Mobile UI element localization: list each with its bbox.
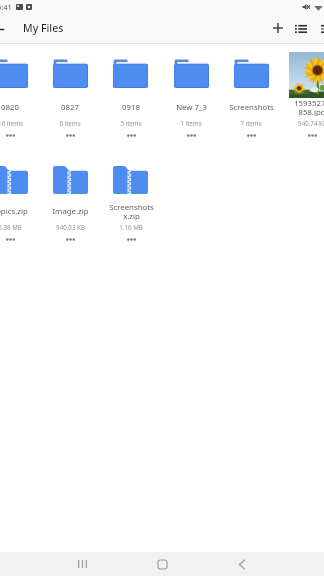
button[interactable]: More options — [315, 14, 324, 44]
staticText: 5 items — [120, 119, 142, 127]
staticText: My Files — [23, 21, 64, 35]
staticText: 16 items — [0, 119, 23, 127]
staticText: Screenshots x.zip — [109, 202, 154, 220]
button[interactable]: New 7_3 — [161, 52, 221, 134]
button[interactable]: More options — [179, 130, 203, 140]
button[interactable]: View as list — [289, 14, 312, 44]
staticText: topics.zip — [0, 206, 28, 217]
button[interactable]: Image.zip — [40, 160, 100, 238]
button[interactable]: 15935272858.jpg — [282, 52, 324, 134]
staticText: 1.16 MB — [119, 223, 143, 231]
button[interactable]: Back — [0, 14, 8, 44]
button[interactable]: More options — [0, 130, 22, 140]
staticText: 0820 — [1, 102, 19, 113]
button[interactable]: More options — [58, 130, 82, 140]
button[interactable]: Screenshots — [221, 52, 281, 134]
button[interactable]: More options — [119, 234, 143, 244]
button[interactable]: More options — [58, 234, 82, 244]
button[interactable]: topics.zip — [0, 160, 40, 238]
staticText: 15935272 858.jpg — [294, 98, 324, 116]
staticText: 940.03 KB — [56, 223, 85, 231]
staticText: 6.38 MB — [0, 223, 22, 231]
button[interactable]: More options — [300, 130, 324, 140]
button[interactable]: More options — [239, 130, 263, 140]
button[interactable]: Screenshotsx.zip — [101, 160, 161, 238]
staticText: Screenshots — [229, 102, 274, 113]
staticText: 0918 — [122, 102, 140, 113]
staticText: 0827 — [61, 102, 79, 113]
staticText: 5:41 — [0, 2, 12, 12]
staticText: 6 items — [59, 119, 81, 127]
button[interactable]: Home — [146, 552, 178, 576]
button[interactable]: 0918 — [101, 52, 161, 134]
staticText: 1 items — [180, 119, 202, 127]
button[interactable]: 0820 — [0, 52, 40, 134]
staticText: New 7_3 — [176, 102, 207, 113]
button[interactable]: Back — [226, 552, 257, 576]
staticText: 7 items — [240, 119, 262, 127]
button[interactable]: 0827 — [40, 52, 100, 134]
button[interactable]: More options — [0, 234, 22, 244]
button[interactable]: Recent apps — [67, 552, 98, 576]
button[interactable]: More options — [119, 130, 143, 140]
staticText: Image.zip — [52, 206, 89, 217]
button[interactable]: Add — [266, 14, 289, 44]
staticText: 940.74 KB — [298, 119, 324, 127]
